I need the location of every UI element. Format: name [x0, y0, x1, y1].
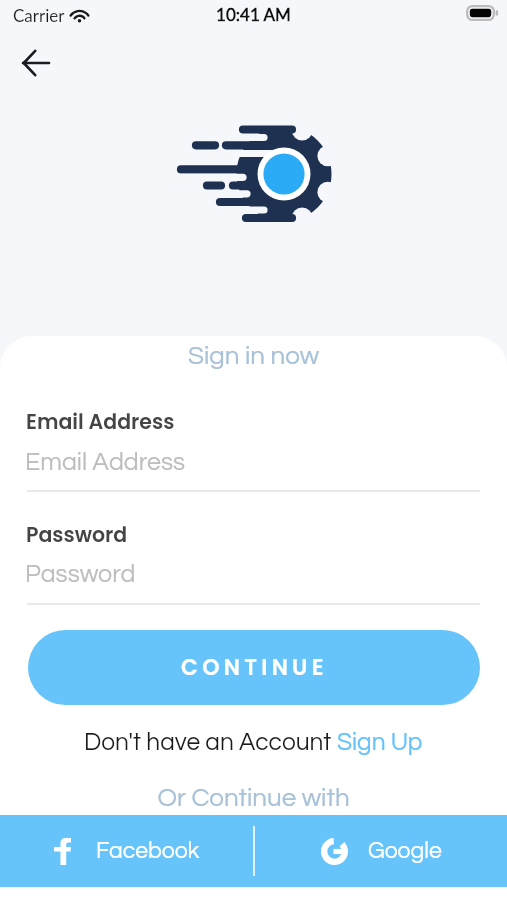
staticText: Password [26, 520, 128, 549]
staticText: Carrier [13, 5, 65, 25]
staticText: Don't have an Account [84, 730, 337, 755]
staticText: Password [25, 561, 136, 587]
button[interactable]: Facebook [0, 815, 253, 887]
button[interactable]: Back [12, 39, 60, 87]
staticText: Google [368, 839, 442, 863]
staticText: Or Continue with [0, 785, 507, 812]
button[interactable]: CONTINUE [28, 630, 480, 705]
staticText: Email Address [26, 407, 175, 436]
staticText: Facebook [96, 839, 200, 863]
staticText: CONTINUE [181, 652, 328, 683]
staticText: Email Address [25, 449, 185, 475]
button[interactable]: Sign Up [337, 730, 423, 755]
button[interactable]: Google [255, 815, 507, 887]
staticText: 10:41 AM [0, 4, 507, 24]
staticText: Sign in now [0, 343, 507, 370]
